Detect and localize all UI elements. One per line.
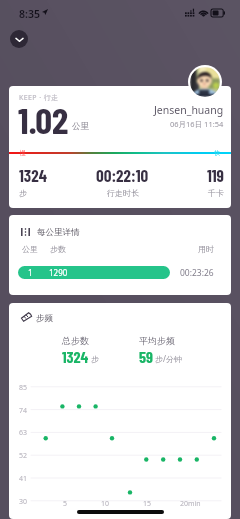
button[interactable]: Profile photo — [190, 67, 220, 97]
staticText: 步 — [91, 354, 99, 364]
staticText: 63 — [19, 428, 28, 438]
staticText: 1324 — [62, 347, 89, 366]
staticText: 59 — [139, 347, 153, 366]
staticText: 平均步频 — [139, 335, 175, 346]
staticText: 用时 — [198, 244, 214, 254]
staticText: 步/分钟 — [155, 353, 182, 364]
staticText: 公里 — [22, 244, 38, 254]
staticText: 10 — [101, 499, 110, 509]
button[interactable]: 1 — [18, 266, 170, 279]
staticText: 行走时长 — [107, 188, 139, 198]
staticText: 步数 — [50, 244, 66, 254]
staticText: 1324 — [19, 165, 47, 185]
staticText: 00:23:26 — [180, 267, 214, 279]
button[interactable]: 步频 — [9, 303, 231, 519]
staticText: 5 — [63, 499, 68, 509]
staticText: 千卡 — [208, 188, 224, 198]
staticText: 8:35 — [19, 7, 40, 21]
staticText: 步 — [19, 188, 27, 198]
staticText: 00:22:10 — [96, 165, 149, 185]
staticText: 1 — [28, 267, 33, 278]
staticText: 1290 — [49, 267, 68, 278]
button[interactable]: KEEP · 行走 — [9, 86, 231, 208]
staticText: 每公里详情 — [37, 227, 80, 238]
staticText: 85 — [19, 383, 28, 393]
staticText: 06月16日 11:54 — [170, 119, 224, 129]
staticText: 52 — [19, 451, 28, 461]
staticText: 30 — [19, 497, 28, 507]
staticText: 快 — [214, 149, 220, 157]
staticText: 慢 — [20, 149, 26, 157]
staticText: 1.02 — [18, 97, 69, 141]
staticText: 74 — [19, 406, 28, 416]
button[interactable]: 每公里详情 — [9, 215, 231, 295]
staticText: KEEP · 行走 — [19, 93, 59, 103]
staticText: 41 — [19, 474, 28, 484]
staticText: 15 — [143, 499, 152, 509]
staticText: 公里 — [72, 121, 89, 132]
staticText: 总步数 — [62, 335, 89, 346]
staticText: 20min — [180, 499, 201, 509]
button[interactable]: Collapse — [10, 30, 28, 48]
staticText: Jensen_huang — [154, 103, 224, 117]
staticText: 119 — [207, 165, 224, 185]
staticText: 步频 — [36, 313, 53, 324]
